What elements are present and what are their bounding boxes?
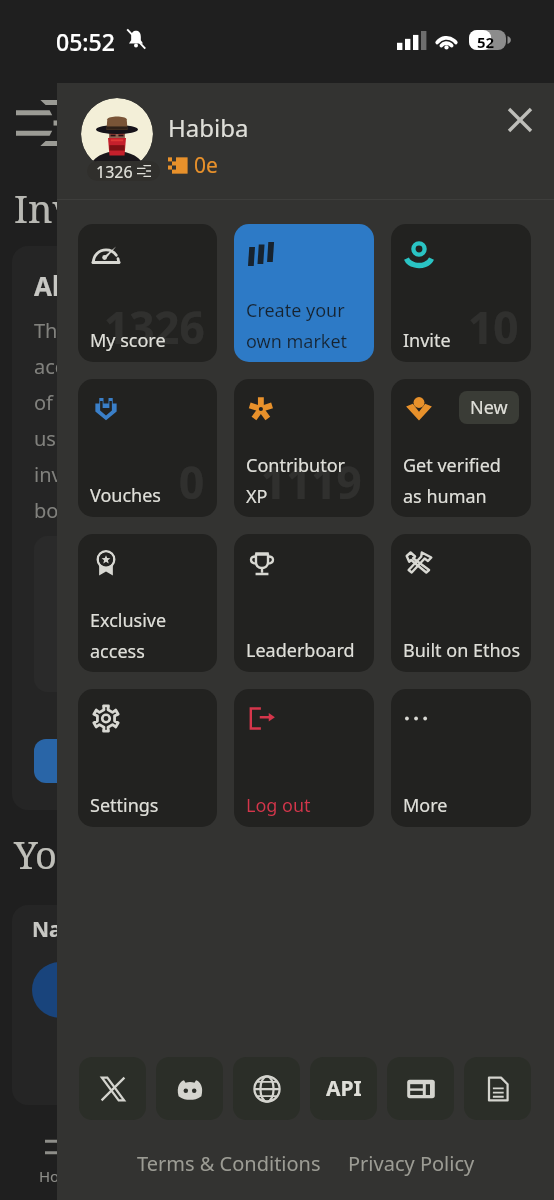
button[interactable]: More bbox=[391, 689, 531, 827]
staticText: My score bbox=[90, 328, 166, 353]
button[interactable]: card bbox=[387, 1057, 454, 1120]
button[interactable]: api bbox=[310, 1057, 377, 1120]
staticText: New bbox=[470, 395, 508, 420]
staticText: Invite bbox=[403, 328, 451, 353]
staticText: Get verified as human bbox=[403, 453, 501, 508]
staticText: Name bbox=[32, 915, 95, 944]
button[interactable]: Close bbox=[498, 98, 542, 142]
button[interactable]: Settings bbox=[78, 689, 217, 827]
staticText: 1326 bbox=[96, 161, 133, 181]
staticText: Create your own market bbox=[246, 298, 348, 353]
staticText: This is account of the user invite bonus bbox=[34, 317, 109, 524]
button[interactable]: Log out bbox=[234, 689, 374, 827]
staticText: Contributor XP bbox=[246, 453, 345, 508]
button[interactable]: globe bbox=[233, 1057, 300, 1120]
staticText: 0 bbox=[179, 452, 205, 512]
staticText: Invite bbox=[14, 182, 121, 234]
staticText: More bbox=[403, 793, 448, 818]
button[interactable]: 0 bbox=[78, 379, 217, 517]
staticText: 0e bbox=[194, 151, 218, 180]
button[interactable]: discord bbox=[156, 1057, 223, 1120]
staticText: API bbox=[326, 1074, 362, 1103]
staticText: 1119 bbox=[261, 452, 362, 512]
staticText: Home bbox=[39, 1166, 82, 1186]
staticText: Habiba bbox=[168, 111, 249, 144]
button[interactable]: Built on Ethos bbox=[391, 534, 531, 672]
staticText: 05:52 bbox=[56, 26, 115, 57]
staticText: Leaderboard bbox=[246, 638, 355, 663]
button[interactable]: Exclusive access bbox=[78, 534, 217, 672]
button[interactable]: Create your own market bbox=[234, 224, 374, 362]
staticText: Your bbox=[14, 828, 100, 880]
staticText: Log out bbox=[246, 793, 311, 818]
staticText: 52 bbox=[477, 32, 495, 52]
button[interactable]: Privacy Policy bbox=[348, 1150, 475, 1177]
button[interactable]: New bbox=[391, 379, 531, 517]
button[interactable]: doc bbox=[464, 1057, 531, 1120]
staticText: About bbox=[34, 268, 113, 303]
staticText: Built on Ethos bbox=[403, 638, 521, 663]
staticText: Exclusive access bbox=[90, 608, 167, 663]
staticText: Settings bbox=[90, 793, 159, 818]
button[interactable]: 1326 bbox=[78, 224, 217, 362]
staticText: Vouches bbox=[90, 483, 161, 508]
staticText: 10 bbox=[468, 297, 519, 357]
button[interactable]: x bbox=[79, 1057, 146, 1120]
staticText: 1326 bbox=[104, 297, 205, 357]
button[interactable]: Leaderboard bbox=[234, 534, 374, 672]
button[interactable]: 10 bbox=[391, 224, 531, 362]
button[interactable]: Terms & Conditions bbox=[137, 1150, 321, 1177]
button[interactable]: 1119 bbox=[234, 379, 374, 517]
